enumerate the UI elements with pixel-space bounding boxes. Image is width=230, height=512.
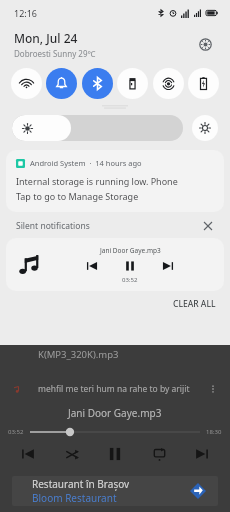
button[interactable]: Silent notifications: [6, 214, 224, 238]
staticText: Tap to go to Manage Storage: [16, 190, 139, 202]
button[interactable]: Next: [159, 257, 177, 275]
button[interactable]: Previous: [16, 442, 40, 466]
button[interactable]: Android System · 14 hours ago: [6, 150, 224, 212]
staticText: 18:30: [206, 428, 222, 436]
staticText: Silent notifications: [16, 220, 90, 232]
staticText: K(MP3_320K).mp3: [38, 348, 119, 361]
staticText: Bloom Restaurant: [32, 491, 117, 505]
staticText: Internal storage is running low. Phone p…: [16, 175, 214, 187]
staticText: Jani Door Gaye.mp3: [68, 406, 162, 420]
button[interactable]: Pause: [121, 257, 139, 275]
button[interactable]: Battery saver: [188, 68, 219, 99]
staticText: 03:52: [122, 276, 138, 284]
staticText: Dobroesti Sunny 29℃: [14, 48, 96, 59]
button[interactable]: Wi-Fi: [11, 68, 42, 99]
staticText: Mon, Jul 24: [14, 30, 78, 46]
button[interactable]: Pause: [103, 442, 127, 466]
button[interactable]: Restaurant în Brașov: [12, 476, 218, 506]
button[interactable]: Settings: [194, 33, 216, 55]
button[interactable]: Bluetooth: [82, 68, 113, 99]
staticText: mehfil me teri hum na rahe to by arijit: [38, 383, 190, 395]
button[interactable]: CLEAR ALL: [165, 294, 224, 314]
button[interactable]: Shuffle: [60, 442, 84, 466]
button[interactable]: Notifications: [46, 68, 77, 99]
staticText: Android System · 14 hours ago: [30, 158, 142, 168]
staticText: CLEAR ALL: [173, 298, 216, 310]
button[interactable]: Jani Door Gaye.mp3: [6, 238, 224, 291]
staticText: 03:52: [8, 428, 24, 436]
button[interactable]: Auto brightness: [192, 115, 218, 141]
staticText: Jani Door Gaye.mp3: [100, 246, 161, 255]
button[interactable]: Repeat: [147, 442, 171, 466]
button[interactable]: Brightness: [12, 115, 183, 141]
button[interactable]: Hotspot: [153, 68, 184, 99]
button[interactable]: Next: [190, 442, 214, 466]
button[interactable]: Flashlight: [117, 68, 148, 99]
staticText: 12:16: [14, 7, 38, 19]
button[interactable]: Dismiss silent notifications: [200, 218, 216, 234]
staticText: Restaurant în Brașov: [32, 477, 130, 491]
button[interactable]: Previous: [83, 257, 101, 275]
